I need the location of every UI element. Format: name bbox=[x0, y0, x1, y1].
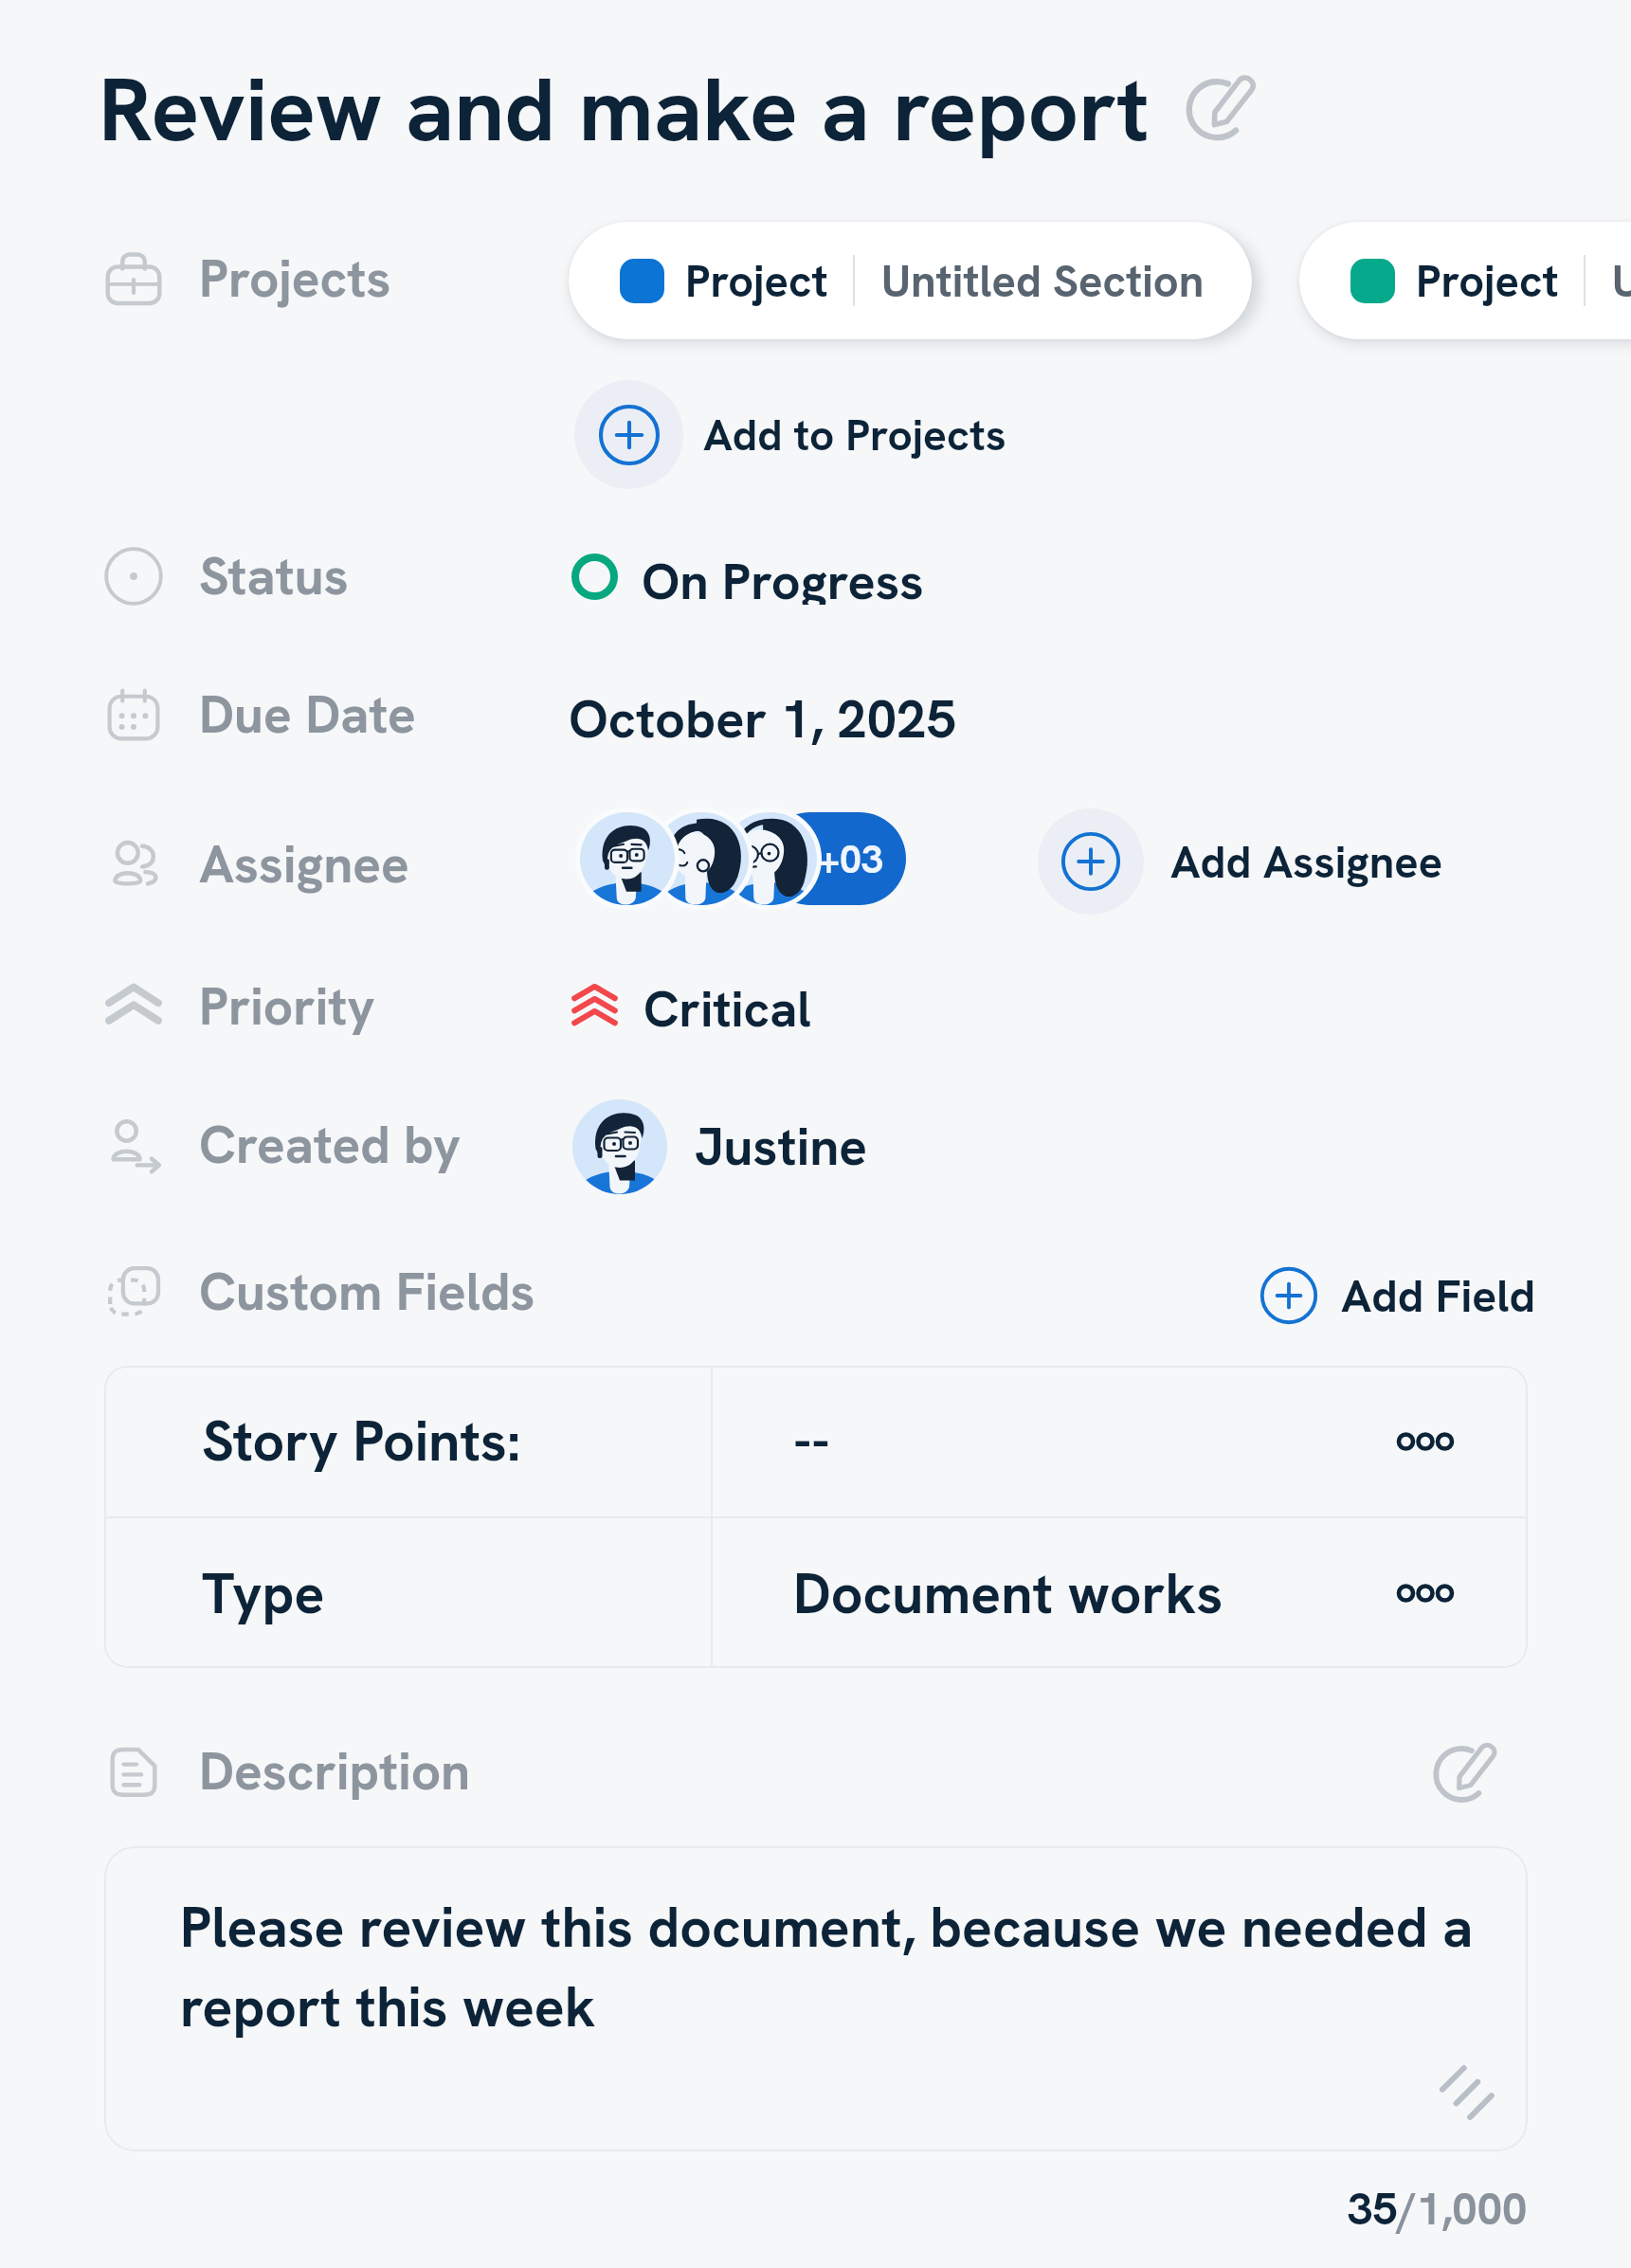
staticText: Story Points: bbox=[202, 1405, 521, 1478]
staticText: Review and make a report bbox=[99, 51, 1150, 165]
staticText: Project bbox=[1416, 252, 1559, 310]
button[interactable]: Add to Projects bbox=[574, 380, 1006, 489]
staticText: Priority bbox=[199, 972, 375, 1041]
button[interactable]: More options bbox=[1374, 1390, 1477, 1493]
button[interactable]: Edit title bbox=[1182, 67, 1263, 149]
staticText: Description bbox=[199, 1737, 471, 1805]
staticText: October 1, 2025 bbox=[569, 684, 956, 745]
staticText: -- bbox=[793, 1405, 830, 1478]
staticText: Custom Fields bbox=[199, 1258, 535, 1326]
staticText: Status bbox=[199, 542, 349, 610]
staticText: Please review this document, because we … bbox=[180, 1891, 1474, 2043]
staticText: On Progress bbox=[642, 548, 924, 605]
button[interactable]: Add Field bbox=[1259, 1266, 1536, 1325]
button[interactable]: More options bbox=[1374, 1542, 1477, 1644]
button[interactable]: Project bbox=[1299, 222, 1631, 339]
staticText: Document works bbox=[793, 1557, 1223, 1630]
staticText: Add Assignee bbox=[1170, 833, 1443, 891]
staticText: Untitled Section bbox=[1612, 252, 1631, 310]
staticText: 35 bbox=[1348, 2180, 1398, 2238]
staticText: Due Date bbox=[199, 680, 416, 749]
staticText: Projects bbox=[199, 245, 391, 313]
staticText: +03 bbox=[818, 834, 883, 884]
staticText: Critical bbox=[643, 976, 811, 1039]
staticText: Type bbox=[202, 1557, 325, 1630]
button[interactable]: Add Assignee bbox=[1038, 808, 1443, 915]
staticText: Add to Projects bbox=[703, 407, 1006, 463]
staticText: Untitled Section bbox=[881, 252, 1205, 310]
staticText: Assignee bbox=[199, 830, 409, 898]
staticText: Created by bbox=[199, 1111, 462, 1179]
staticText: Project bbox=[685, 252, 828, 310]
button[interactable]: Edit description bbox=[1426, 1733, 1506, 1812]
staticText: /1,000 bbox=[1398, 2180, 1528, 2238]
button[interactable]: Project bbox=[569, 222, 1252, 339]
staticText: Justine bbox=[695, 1113, 867, 1181]
staticText: Add Field bbox=[1341, 1266, 1536, 1325]
